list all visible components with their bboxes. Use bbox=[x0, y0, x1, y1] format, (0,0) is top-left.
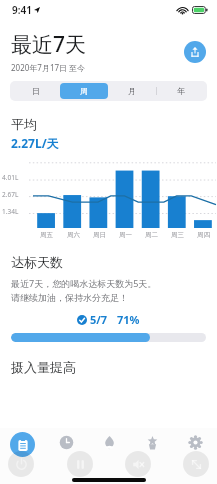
staticText: 日 bbox=[32, 86, 40, 96]
staticText: 1.34L bbox=[2, 207, 19, 216]
staticText: 2020年7月17日 至今 bbox=[11, 62, 86, 73]
button[interactable]: Power bbox=[8, 451, 34, 477]
staticText: 2.27L/天 bbox=[11, 135, 59, 151]
staticText: 2.67L bbox=[2, 190, 19, 199]
button[interactable]: Mute bbox=[125, 451, 151, 477]
button[interactable]: 年 bbox=[157, 83, 205, 99]
staticText: 达标天数 bbox=[11, 254, 63, 270]
button[interactable]: Settings bbox=[174, 432, 217, 462]
button[interactable]: History bbox=[44, 432, 88, 462]
button[interactable]: 周 bbox=[60, 83, 108, 99]
button[interactable]: Pause bbox=[67, 451, 93, 477]
button[interactable]: Expand bbox=[183, 451, 209, 477]
staticText: 请继续加油，保持水分充足！ bbox=[11, 292, 128, 303]
staticText: 周四 bbox=[197, 231, 210, 239]
button[interactable]: Share bbox=[184, 41, 206, 63]
staticText: 周日 bbox=[93, 231, 106, 239]
staticText: 月 bbox=[128, 86, 136, 96]
button[interactable]: Achievements bbox=[131, 432, 174, 462]
staticText: 71% bbox=[117, 312, 140, 327]
staticText: 摄入量提高 bbox=[11, 359, 76, 375]
staticText: 平均 bbox=[11, 116, 37, 132]
staticText: 周六 bbox=[67, 231, 80, 239]
staticText: 周三 bbox=[171, 231, 184, 239]
button[interactable]: 日 bbox=[12, 83, 60, 99]
staticText: 最近7天 bbox=[11, 30, 87, 59]
staticText: 年 bbox=[177, 86, 185, 96]
button[interactable]: 月 bbox=[108, 83, 156, 99]
staticText: 周五 bbox=[40, 231, 53, 239]
staticText: 5/7 bbox=[90, 312, 108, 327]
button[interactable]: Records bbox=[0, 432, 44, 462]
staticText: 周二 bbox=[145, 231, 158, 239]
staticText: 最近7天，您的喝水达标天数为5天。 bbox=[11, 277, 157, 289]
button[interactable]: Water bbox=[88, 432, 131, 462]
staticText: 周一 bbox=[119, 231, 132, 239]
staticText: 9:41 bbox=[12, 3, 32, 17]
staticText: 周 bbox=[80, 86, 88, 96]
staticText: 4.01L bbox=[2, 173, 19, 182]
